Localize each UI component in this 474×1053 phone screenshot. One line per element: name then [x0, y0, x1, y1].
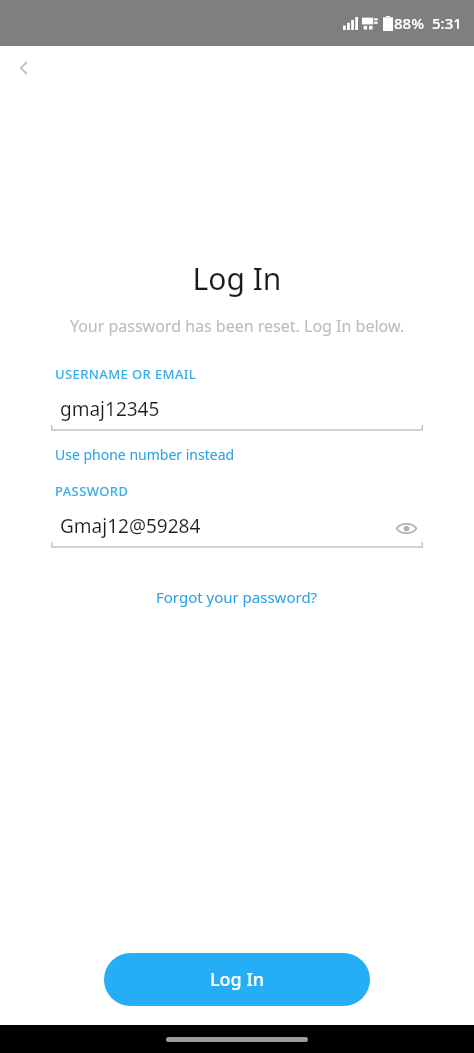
button[interactable]: Use phone number instead: [48, 443, 241, 466]
staticText: USERNAME OR EMAIL: [55, 365, 197, 383]
staticText: Forgot your password?: [156, 587, 318, 607]
staticText: Log In: [0, 258, 474, 299]
button[interactable]: Back: [2, 46, 46, 90]
staticText: Use phone number instead: [55, 445, 235, 464]
button[interactable]: Forgot your password?: [146, 582, 328, 612]
button[interactable]: Gmaj12@59284: [51, 508, 423, 548]
button[interactable]: Show password: [389, 511, 423, 545]
staticText: gmaj12345: [60, 396, 160, 422]
button[interactable]: gmaj12345: [51, 391, 423, 431]
staticText: Your password has been reset. Log In bel…: [64, 315, 410, 337]
staticText: PASSWORD: [55, 482, 129, 500]
button[interactable]: Log In: [104, 953, 370, 1006]
staticText: Gmaj12@59284: [60, 513, 201, 539]
staticText: 88%: [394, 13, 424, 33]
staticText: Log In: [210, 967, 265, 992]
staticText: 5:31: [432, 13, 462, 33]
